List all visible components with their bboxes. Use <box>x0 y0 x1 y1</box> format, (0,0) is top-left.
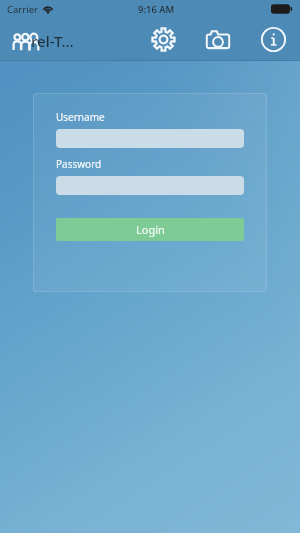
staticText: 9:16 AM <box>138 3 175 16</box>
button[interactable]: Password <box>56 157 102 171</box>
button[interactable]: Info <box>251 18 295 61</box>
button[interactable]: Username <box>56 110 105 124</box>
button[interactable]: Password input <box>56 176 244 195</box>
button[interactable]: rel-T... <box>0 18 120 61</box>
button[interactable]: Camera <box>196 18 240 61</box>
staticText: Carrier <box>7 3 38 16</box>
staticText: rel-T... <box>31 31 74 51</box>
button[interactable]: Login <box>56 218 244 241</box>
button[interactable]: Settings <box>141 18 185 61</box>
button[interactable]: Username input <box>56 129 244 148</box>
staticText: Login <box>136 222 165 237</box>
